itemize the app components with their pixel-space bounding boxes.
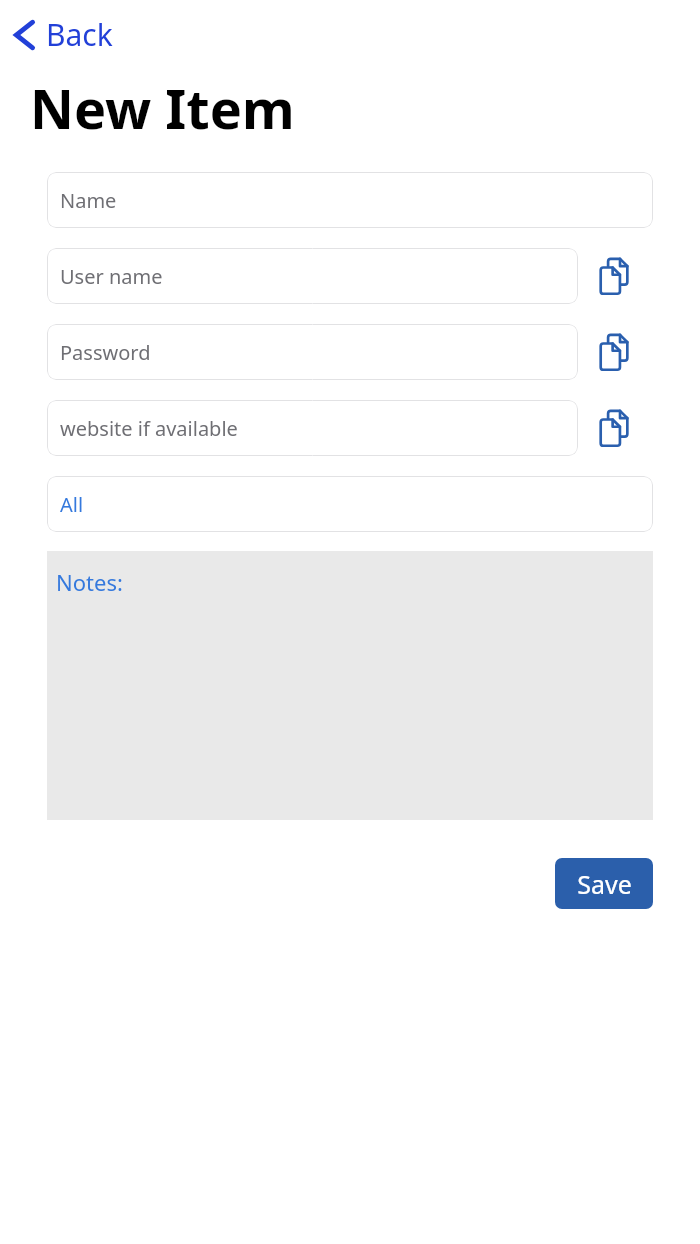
- button[interactable]: Name: [47, 172, 653, 228]
- staticText: Password: [60, 339, 151, 366]
- button[interactable]: All: [47, 476, 653, 532]
- button[interactable]: website if available: [47, 400, 578, 456]
- staticText: Notes:: [56, 567, 123, 597]
- button[interactable]: Copy user name: [578, 248, 653, 304]
- button[interactable]: Back: [0, 10, 127, 59]
- button[interactable]: Notes:: [47, 551, 653, 820]
- staticText: New Item: [30, 71, 295, 145]
- button[interactable]: User name: [47, 248, 578, 304]
- other: Back: [12, 19, 36, 51]
- staticText: All: [60, 491, 84, 518]
- button[interactable]: Save: [555, 858, 653, 909]
- button[interactable]: Copy password: [578, 324, 653, 380]
- staticText: Save: [577, 867, 632, 901]
- button[interactable]: Password: [47, 324, 578, 380]
- staticText: Name: [60, 187, 117, 214]
- staticText: Back: [46, 14, 113, 55]
- staticText: User name: [60, 263, 163, 290]
- button[interactable]: Copy website: [578, 400, 653, 456]
- staticText: website if available: [60, 415, 238, 442]
